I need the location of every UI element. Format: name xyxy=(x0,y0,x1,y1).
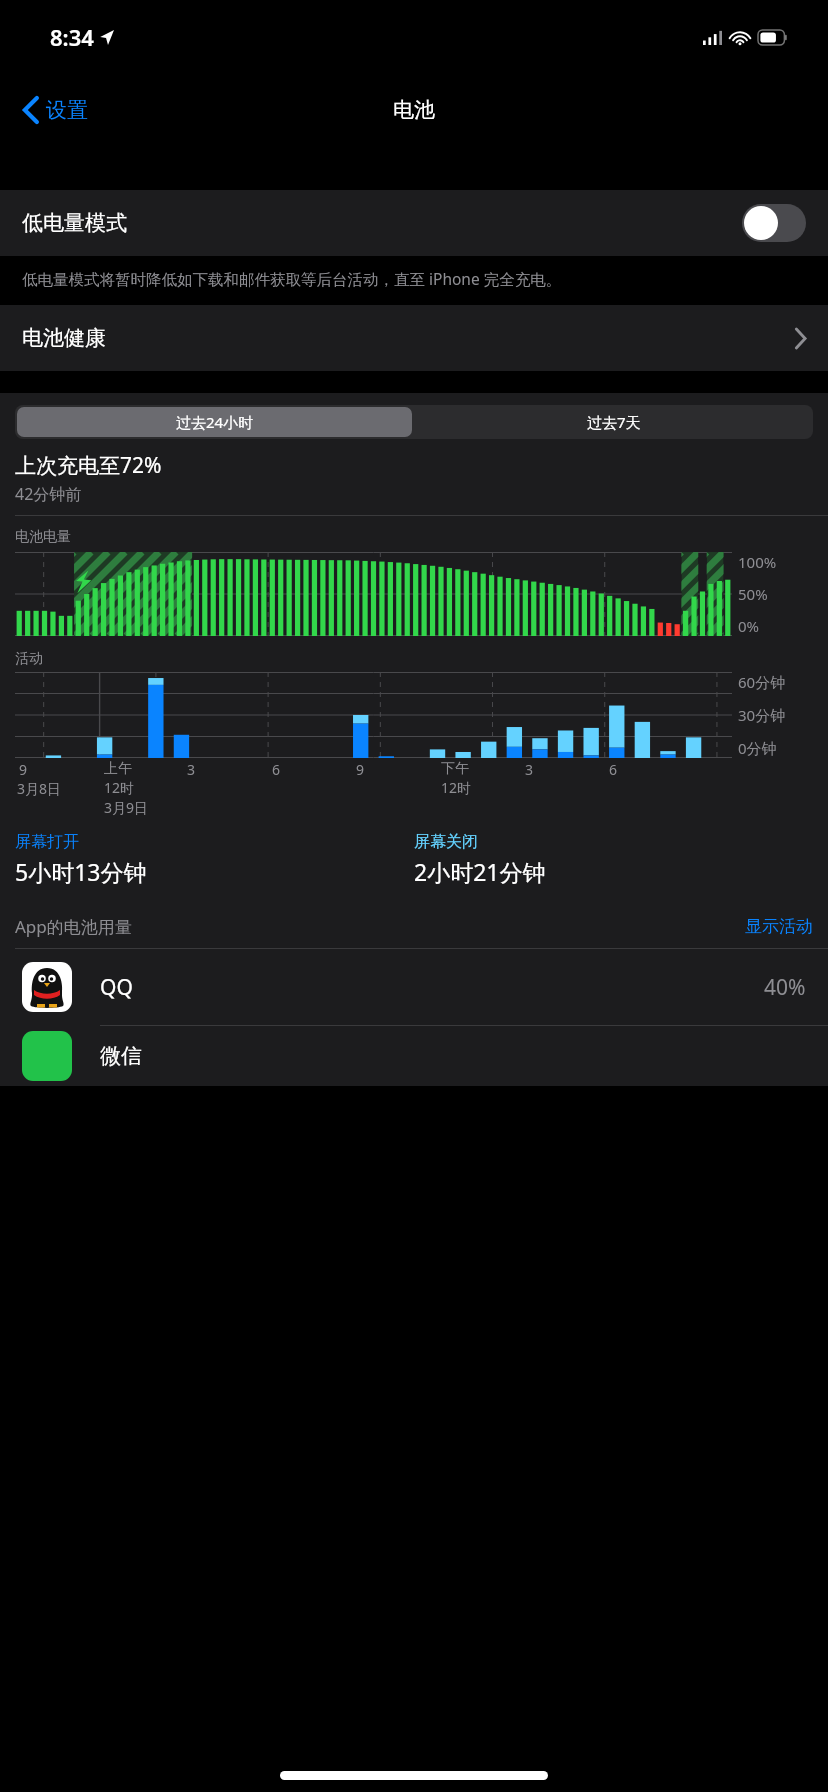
staticText: QQ xyxy=(100,973,133,1002)
button[interactable]: 显示活动 xyxy=(745,916,813,937)
staticText: 上午 12时 3月9日 xyxy=(104,760,149,817)
staticText: 设置 xyxy=(46,97,88,123)
button[interactable]: 过去7天 xyxy=(414,405,813,439)
staticText: 低电量模式将暂时降低如下载和邮件获取等后台活动，直至 iPhone 完全充电。 xyxy=(22,268,562,289)
staticText: 8:34 xyxy=(50,22,94,52)
button[interactable]: 微信 xyxy=(0,1026,828,1086)
staticText: 电池电量 xyxy=(15,528,71,546)
staticText: 3 xyxy=(187,760,196,779)
button[interactable]: 电池健康 xyxy=(0,305,828,371)
staticText: 9 xyxy=(356,760,365,779)
staticText: 屏幕打开 xyxy=(15,832,79,852)
staticText: 40% xyxy=(764,973,806,1002)
staticText: 42分钟前 xyxy=(15,483,82,505)
staticText: 下午 12时 xyxy=(441,760,472,797)
staticText: 6 xyxy=(272,760,281,779)
staticText: App的电池用量 xyxy=(15,915,132,938)
button[interactable]: 低电量模式 xyxy=(0,190,828,256)
staticText: 3 xyxy=(525,760,534,779)
staticText: 上次充电至72% xyxy=(15,451,162,480)
staticText: 50% xyxy=(738,584,768,604)
staticText: 3月8日 xyxy=(17,779,62,798)
staticText: 30分钟 xyxy=(738,705,786,725)
staticText: 100% xyxy=(738,552,777,572)
staticText: 微信 xyxy=(100,1043,142,1069)
staticText: 电池 xyxy=(393,97,435,123)
staticText: 0分钟 xyxy=(738,738,777,758)
staticText: 5小时13分钟 xyxy=(15,856,147,887)
staticText: 60分钟 xyxy=(738,672,786,692)
button[interactable]: QQ xyxy=(0,949,828,1025)
staticText: 9 xyxy=(19,760,28,779)
button[interactable]: 设置 xyxy=(18,91,94,129)
staticText: 过去7天 xyxy=(587,412,641,432)
staticText: 显示活动 xyxy=(745,916,813,937)
button[interactable]: Low Power Mode toggle xyxy=(742,204,806,242)
staticText: 过去24小时 xyxy=(176,412,254,432)
button[interactable]: 过去24小时 xyxy=(17,407,412,437)
staticText: 6 xyxy=(609,760,618,779)
staticText: 2小时21分钟 xyxy=(414,856,546,887)
staticText: 0% xyxy=(738,616,760,636)
staticText: 电池健康 xyxy=(22,325,106,351)
staticText: 活动 xyxy=(15,650,43,668)
staticText: 屏幕关闭 xyxy=(414,832,478,852)
staticText: 低电量模式 xyxy=(22,210,127,236)
